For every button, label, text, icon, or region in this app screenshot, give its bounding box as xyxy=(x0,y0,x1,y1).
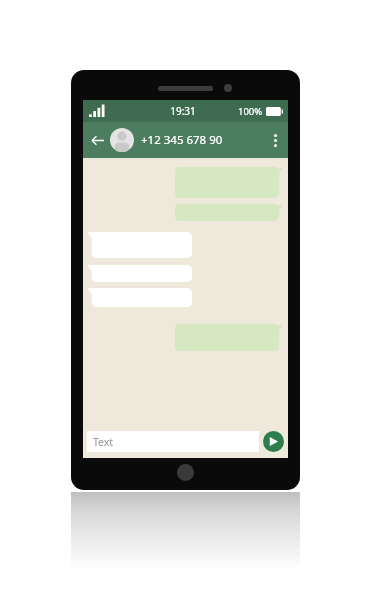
staticText: Text xyxy=(93,435,114,449)
button[interactable]: Send xyxy=(263,431,284,452)
button[interactable]: Back xyxy=(87,130,107,150)
button[interactable]: Received message xyxy=(87,288,192,307)
button[interactable]: Contact photo xyxy=(110,128,134,152)
button[interactable]: Text xyxy=(87,431,259,452)
button[interactable]: Sent message xyxy=(175,324,284,351)
staticText: +12 345 678 90 xyxy=(141,132,223,148)
button[interactable]: Sent message xyxy=(175,204,284,221)
button[interactable]: Received message xyxy=(87,265,192,282)
button[interactable]: Home xyxy=(177,464,194,481)
button[interactable]: Sent message xyxy=(175,167,284,198)
staticText: 100% xyxy=(238,105,263,118)
staticText: 19:31 xyxy=(170,104,196,118)
button[interactable]: Received message xyxy=(87,232,192,258)
button[interactable]: More options xyxy=(266,131,284,149)
